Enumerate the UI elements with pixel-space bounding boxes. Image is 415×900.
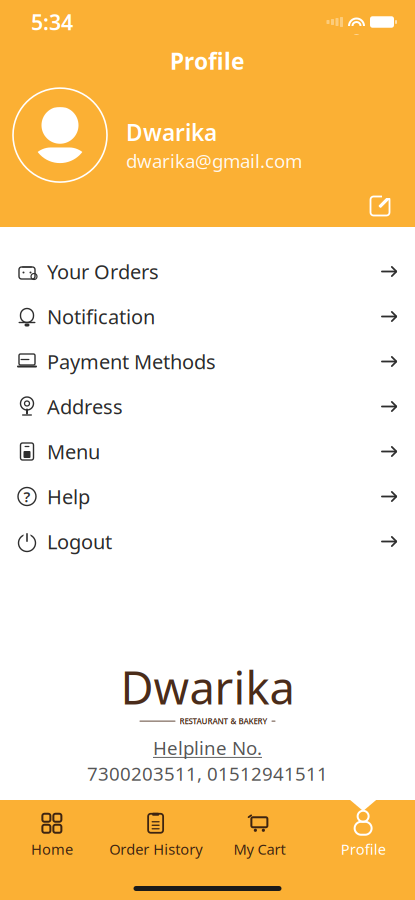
staticText: Home (31, 839, 73, 859)
button[interactable]: ? (0, 474, 415, 519)
staticText: Logout (47, 528, 112, 555)
staticText: Helpline No. (153, 735, 262, 760)
staticText: Profile (341, 839, 386, 859)
staticText: Profile (170, 46, 245, 76)
staticText: Menu (47, 438, 100, 465)
staticText: Dwarika (126, 117, 217, 147)
button[interactable]: Notification (0, 294, 415, 339)
staticText: Order History (109, 839, 202, 859)
staticText: Help (47, 483, 90, 510)
staticText: Your Orders (47, 258, 159, 285)
staticText: 7300203511, 01512941511 (87, 761, 328, 786)
button[interactable]: Order History (104, 800, 208, 862)
button[interactable]: Home (0, 800, 104, 862)
button[interactable]: Logout (0, 519, 415, 564)
staticText: 5:34 (31, 8, 73, 36)
button[interactable]: My Cart (207, 800, 311, 862)
button[interactable]: Payment Methods (0, 339, 415, 384)
button[interactable]: Profile (311, 800, 415, 862)
staticText: Notification (47, 303, 155, 330)
staticText: Payment Methods (47, 348, 216, 375)
button[interactable]: Edit profile (363, 191, 397, 221)
staticText: dwarika@gmail.com (126, 148, 302, 173)
staticText: Dwarika (120, 656, 294, 718)
button[interactable]: Menu (0, 429, 415, 474)
staticText: ? (23, 487, 30, 506)
button[interactable]: Address (0, 384, 415, 429)
staticText: Address (47, 393, 123, 420)
staticText: My Cart (233, 839, 285, 859)
button[interactable]: Your Orders (0, 249, 415, 294)
staticText: RESTAURANT & BAKERY (179, 716, 267, 726)
